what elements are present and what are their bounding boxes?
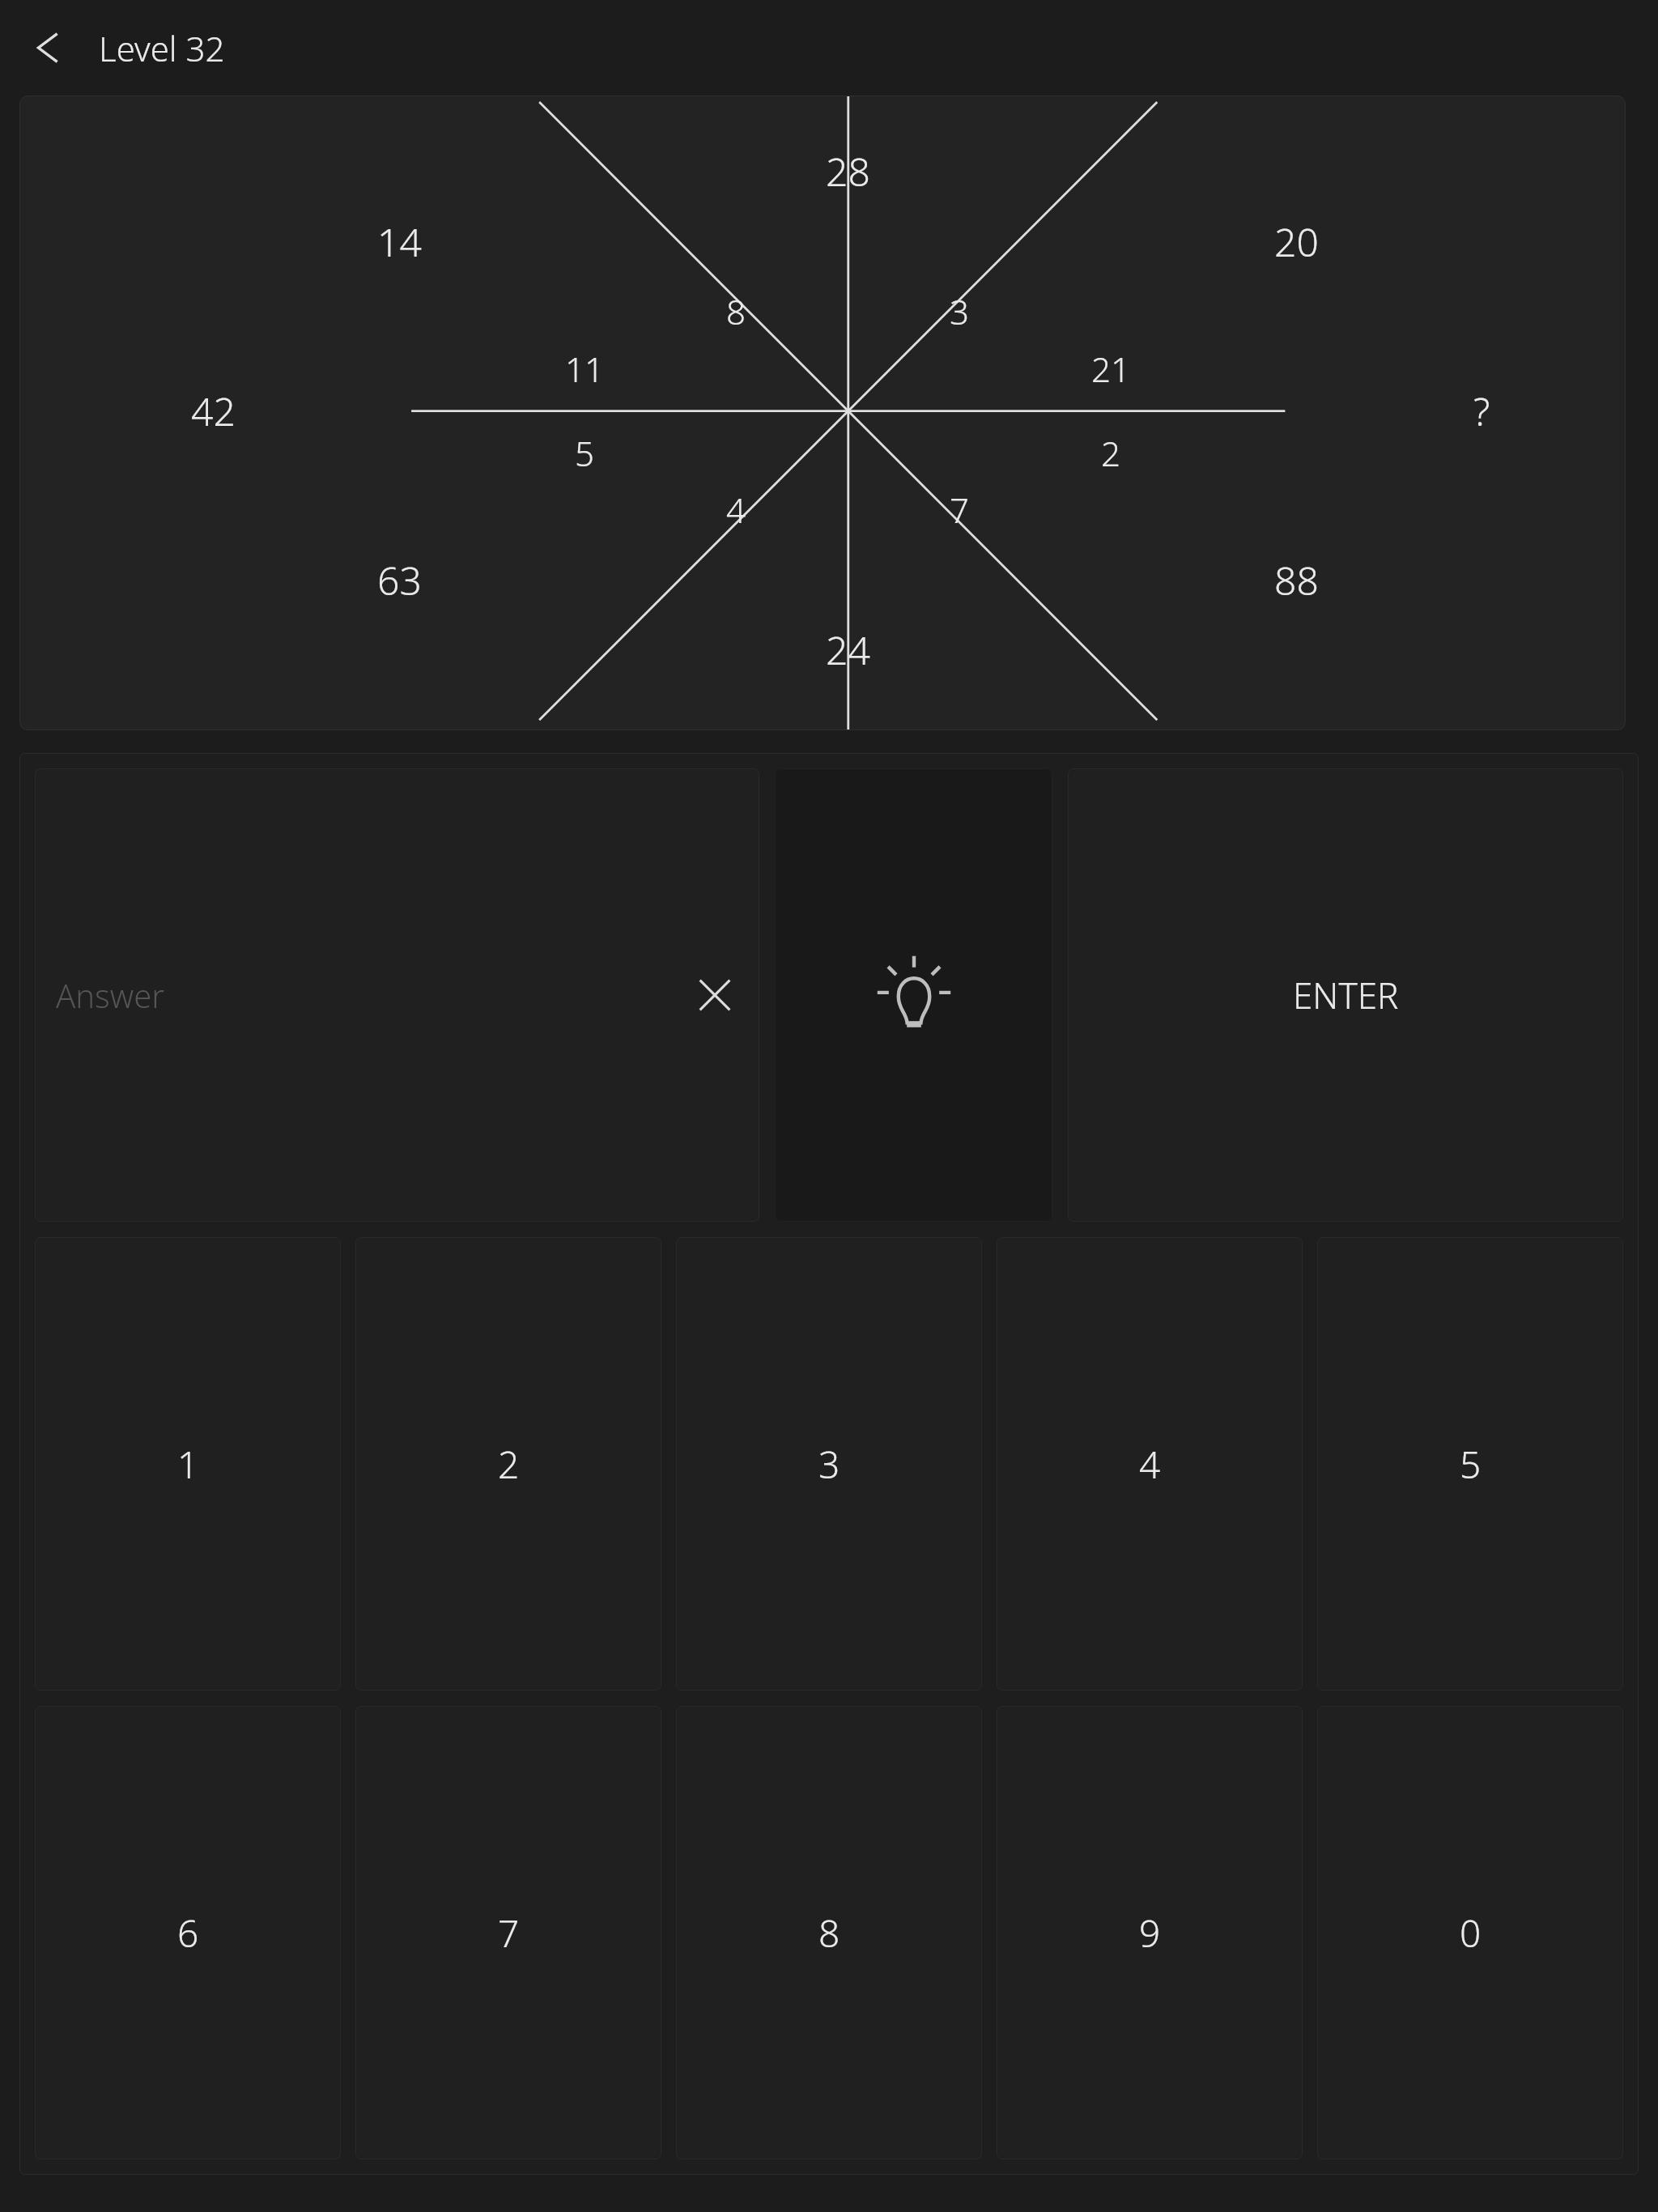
button[interactable]: Hint	[775, 768, 1052, 1222]
staticText: 63	[377, 554, 422, 606]
staticText: 0	[1460, 1908, 1482, 1959]
button[interactable]: Answer	[35, 768, 759, 1222]
staticText: 20	[1274, 215, 1319, 268]
staticText: 21	[1091, 346, 1130, 392]
staticText: ENTER	[1293, 971, 1399, 1019]
button[interactable]: 4	[997, 1237, 1303, 1691]
button[interactable]: 1	[35, 1237, 341, 1691]
staticText: 4	[1139, 1439, 1161, 1490]
button[interactable]: ENTER	[1068, 768, 1623, 1222]
button[interactable]: 5	[1317, 1237, 1623, 1691]
button[interactable]: 7	[355, 1706, 661, 2159]
staticText: 88	[1274, 554, 1319, 606]
staticText: 5	[1460, 1439, 1482, 1490]
staticText: 4	[726, 487, 746, 533]
staticText: 7	[950, 487, 969, 533]
button[interactable]: 8	[676, 1706, 982, 2159]
staticText: 6	[177, 1908, 199, 1959]
button[interactable]: 6	[35, 1706, 341, 2159]
staticText: 42	[191, 385, 236, 437]
staticText: 2	[498, 1439, 520, 1490]
staticText: 3	[950, 288, 969, 334]
staticText: 8	[818, 1908, 840, 1959]
staticText: 9	[1139, 1908, 1161, 1959]
button[interactable]: 9	[997, 1706, 1303, 2159]
staticText: 2	[1101, 430, 1120, 476]
staticText: 28	[826, 145, 870, 198]
button[interactable]: Back	[19, 19, 78, 77]
staticText: 24	[826, 623, 870, 676]
staticText: 14	[377, 215, 422, 268]
staticText: ?	[1473, 385, 1490, 437]
staticText: 3	[818, 1439, 840, 1490]
staticText: 8	[726, 288, 746, 334]
button[interactable]: 0	[1317, 1706, 1623, 2159]
other: Clear answer	[691, 972, 738, 1019]
staticText: Answer	[56, 973, 165, 1017]
button[interactable]: 3	[676, 1237, 982, 1691]
button[interactable]: 2	[355, 1237, 661, 1691]
staticText: 7	[498, 1908, 520, 1959]
staticText: 11	[565, 346, 604, 392]
staticText: Level 32	[99, 25, 225, 71]
staticText: 1	[177, 1439, 199, 1490]
staticText: 5	[575, 430, 594, 476]
